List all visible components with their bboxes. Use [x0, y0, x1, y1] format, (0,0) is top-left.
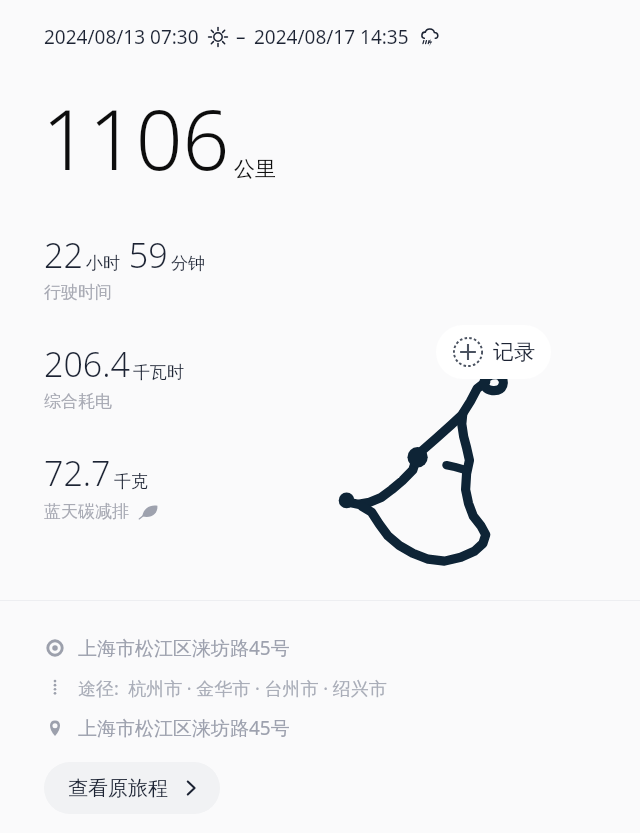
staticText: 综合耗电: [44, 391, 112, 412]
staticText: 2024/08/17 14:35: [254, 24, 409, 50]
staticText: 查看原旅程: [68, 776, 168, 801]
staticText: 小时: [86, 253, 120, 274]
staticText: 千瓦时: [133, 362, 184, 383]
staticText: 途径: 杭州市 · 金华市 · 台州市 · 绍兴市: [78, 676, 387, 701]
staticText: 1106: [42, 82, 230, 194]
staticText: 59: [120, 232, 168, 278]
button[interactable]: 查看原旅程: [44, 762, 220, 814]
button[interactable]: 上海市松江区涞坊路45号: [0, 708, 640, 748]
staticText: 22: [44, 232, 83, 278]
button[interactable]: 上海市松江区涞坊路45号: [0, 628, 640, 668]
staticText: –: [236, 24, 246, 50]
staticText: 72.7: [44, 450, 111, 496]
staticText: 行驶时间: [44, 282, 112, 303]
staticText: 公里: [234, 156, 276, 182]
staticText: 上海市松江区涞坊路45号: [78, 715, 290, 741]
button[interactable]: 途径: 杭州市 · 金华市 · 台州市 · 绍兴市: [0, 668, 640, 708]
staticText: 分钟: [171, 253, 205, 274]
staticText: 2024/08/13 07:30: [44, 24, 199, 50]
staticText: 上海市松江区涞坊路45号: [78, 635, 290, 661]
staticText: 206.4: [44, 341, 130, 387]
staticText: 蓝天碳减排: [44, 501, 129, 522]
staticText: 记录: [493, 339, 535, 365]
staticText: 千克: [114, 471, 148, 492]
button[interactable]: 记录: [436, 325, 551, 379]
